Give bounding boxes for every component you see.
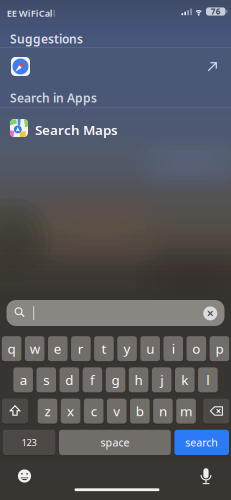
button[interactable]: n bbox=[153, 399, 173, 424]
staticText: l bbox=[53, 7, 56, 19]
staticText: c bbox=[91, 402, 97, 420]
staticText: Search in Apps bbox=[10, 90, 97, 106]
staticText: f bbox=[90, 371, 95, 389]
staticText: g bbox=[111, 371, 119, 389]
button[interactable]: s bbox=[36, 367, 56, 392]
staticText: q bbox=[8, 340, 16, 357]
staticText: a bbox=[20, 371, 27, 389]
button[interactable]: j bbox=[152, 367, 171, 392]
button[interactable]: e bbox=[48, 336, 68, 361]
button[interactable]: Clear search text bbox=[203, 306, 217, 320]
button[interactable]: a bbox=[13, 367, 33, 392]
staticText: d bbox=[65, 371, 73, 389]
button[interactable]: c bbox=[84, 399, 103, 424]
staticText: v bbox=[113, 402, 120, 420]
button[interactable]: g bbox=[106, 367, 125, 392]
button[interactable]: z bbox=[38, 399, 57, 424]
staticText: e bbox=[54, 340, 62, 357]
staticText: m bbox=[180, 402, 192, 420]
button[interactable]: o bbox=[186, 336, 206, 361]
staticText: u bbox=[146, 340, 154, 357]
staticText: 76 bbox=[211, 6, 221, 17]
staticText: x bbox=[67, 402, 74, 420]
button[interactable]: Search Maps bbox=[0, 108, 231, 145]
staticText: z bbox=[44, 402, 50, 420]
staticText: k bbox=[181, 371, 188, 389]
staticText: r bbox=[78, 340, 84, 357]
button[interactable]: x bbox=[61, 399, 80, 424]
button[interactable]: r bbox=[71, 336, 91, 361]
staticText: 123 bbox=[22, 436, 37, 449]
staticText: j bbox=[160, 371, 163, 389]
staticText: b bbox=[136, 402, 144, 420]
button[interactable]: b bbox=[130, 399, 150, 424]
button[interactable]: l bbox=[198, 367, 218, 392]
button[interactable]: Delete bbox=[203, 399, 229, 424]
button[interactable]: y bbox=[117, 336, 137, 361]
button[interactable]: Shift bbox=[2, 399, 28, 424]
staticText: y bbox=[123, 340, 130, 357]
staticText: i bbox=[172, 340, 175, 357]
button[interactable]: k bbox=[175, 367, 195, 392]
button[interactable]: f bbox=[83, 367, 102, 392]
button[interactable]: q bbox=[2, 336, 21, 361]
staticText: Suggestions bbox=[10, 31, 83, 47]
button[interactable]: p bbox=[210, 336, 229, 361]
button[interactable]: m bbox=[176, 399, 196, 424]
button[interactable]: d bbox=[59, 367, 79, 392]
staticText: p bbox=[215, 340, 223, 357]
staticText: EE WiFiCal bbox=[7, 7, 53, 19]
staticText: Search Maps bbox=[35, 121, 118, 139]
button[interactable]: Emoji bbox=[18, 469, 31, 483]
button[interactable]: 123 bbox=[3, 430, 55, 455]
staticText: space bbox=[100, 435, 129, 450]
button[interactable]: Safari suggestion bbox=[0, 47, 231, 85]
button[interactable]: t bbox=[94, 336, 114, 361]
staticText: l bbox=[206, 371, 209, 389]
button[interactable]: i bbox=[163, 336, 183, 361]
button[interactable]: space bbox=[59, 430, 171, 455]
staticText: n bbox=[159, 402, 167, 420]
staticText: s bbox=[43, 371, 49, 389]
button[interactable]: u bbox=[140, 336, 160, 361]
staticText: w bbox=[30, 340, 40, 357]
button[interactable]: h bbox=[129, 367, 148, 392]
button[interactable]: v bbox=[107, 399, 127, 424]
staticText: o bbox=[192, 340, 200, 357]
staticText: h bbox=[135, 371, 143, 389]
button[interactable]: search bbox=[174, 430, 229, 455]
button[interactable]: Dictate bbox=[197, 466, 215, 486]
staticText: t bbox=[101, 340, 106, 357]
button[interactable]: w bbox=[25, 336, 44, 361]
staticText: search bbox=[185, 435, 218, 450]
